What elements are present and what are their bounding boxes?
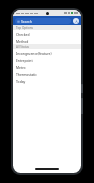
staticText: Method — [16, 39, 29, 43]
staticText: Entrepoint — [16, 58, 33, 62]
staticText: Checked — [16, 32, 30, 36]
staticText: All Status — [16, 45, 30, 49]
button[interactable]: Menu — [15, 18, 71, 24]
staticText: Search — [21, 19, 32, 24]
button[interactable]: Incongruence(feature) — [13, 49, 81, 56]
button[interactable]: Today — [13, 77, 81, 84]
staticText: Today — [16, 79, 26, 83]
other: Menu — [17, 20, 20, 23]
button[interactable]: Thermostatic — [13, 70, 81, 77]
staticText: Metro — [16, 65, 26, 69]
button[interactable]: Entrepoint — [13, 56, 81, 63]
button[interactable]: Method — [13, 37, 81, 44]
button[interactable]: Metro — [13, 63, 81, 70]
button[interactable]: Checked — [13, 30, 81, 37]
staticText: Top Options — [16, 26, 34, 30]
staticText: Incongruence(feature) — [16, 51, 52, 55]
button[interactable]: Account — [73, 18, 79, 24]
staticText: Thermostatic — [16, 72, 37, 76]
